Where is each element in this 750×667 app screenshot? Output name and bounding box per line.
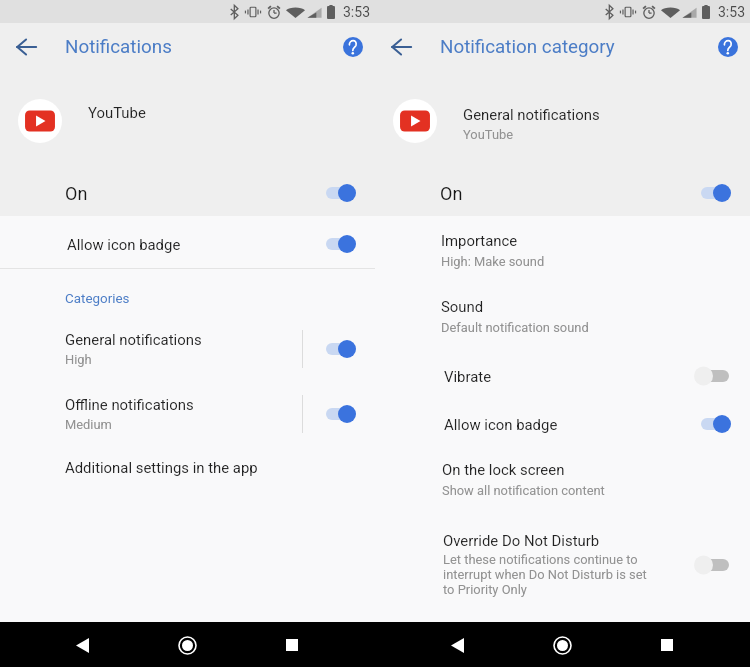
staticText: High: Make sound — [441, 254, 545, 269]
staticText: General notifications — [463, 106, 600, 123]
button[interactable]: Back — [441, 629, 473, 661]
button[interactable]: Help — [714, 33, 742, 61]
button[interactable]: Allow icon badge — [0, 222, 375, 266]
staticText: Sound — [441, 298, 484, 315]
staticText: Default notification sound — [441, 320, 589, 335]
button[interactable]: Help — [339, 33, 367, 61]
staticText: Medium — [65, 417, 112, 432]
button[interactable]: Back — [66, 629, 98, 661]
staticText: Offline notifications — [65, 396, 194, 413]
staticText: Allow icon badge — [67, 236, 181, 253]
button[interactable]: Home — [171, 629, 203, 661]
button[interactable]: General notifications — [0, 328, 375, 370]
staticText: General notifications — [65, 331, 202, 348]
button[interactable]: On — [375, 172, 750, 214]
staticText: Notification category — [440, 36, 615, 58]
staticText: Categories — [65, 291, 130, 307]
staticText: On the lock screen — [442, 461, 565, 478]
button[interactable]: Recents — [276, 629, 308, 661]
button[interactable]: Override Do Not Disturb — [375, 532, 750, 597]
staticText: Vibrate — [444, 368, 492, 385]
staticText: Let these notifications continue to inte… — [443, 552, 647, 597]
button[interactable]: Sound — [375, 298, 750, 335]
staticText: Override Do Not Disturb — [443, 532, 600, 549]
staticText: Importance — [441, 232, 518, 249]
staticText: Notifications — [65, 36, 172, 58]
button[interactable]: Back — [385, 31, 417, 63]
button[interactable]: Importance — [375, 232, 750, 269]
staticText: YouTube — [88, 104, 146, 121]
staticText: Show all notification content — [442, 483, 605, 498]
button[interactable]: On the lock screen — [375, 461, 750, 498]
staticText: On — [65, 183, 88, 204]
staticText: 3:53 — [343, 4, 370, 20]
staticText: On — [440, 183, 463, 204]
button[interactable]: On — [0, 172, 375, 214]
button[interactable]: Offline notifications — [0, 393, 375, 435]
staticText: Allow icon badge — [444, 416, 558, 433]
button[interactable]: Additional settings in the app — [0, 452, 375, 482]
staticText: YouTube — [463, 127, 514, 142]
button[interactable]: Home — [546, 629, 578, 661]
button[interactable]: Recents — [651, 629, 683, 661]
button[interactable]: Vibrate — [375, 364, 750, 388]
staticText: 3:53 — [718, 4, 745, 20]
button[interactable]: Back — [10, 31, 42, 63]
button[interactable]: Allow icon badge — [375, 412, 750, 436]
staticText: Additional settings in the app — [65, 459, 258, 476]
staticText: High — [65, 352, 92, 367]
